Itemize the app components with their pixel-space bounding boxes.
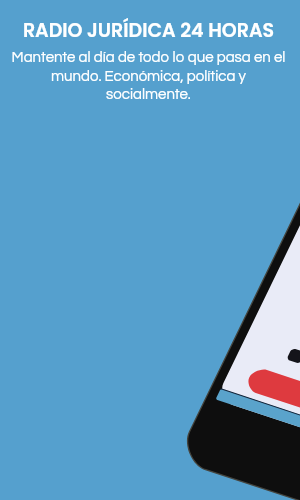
- staticText: RADIO JURÍDICA 24 HORAS: [10, 17, 287, 44]
- staticText: Mantente al día de todo lo que pasa en e…: [10, 50, 287, 102]
